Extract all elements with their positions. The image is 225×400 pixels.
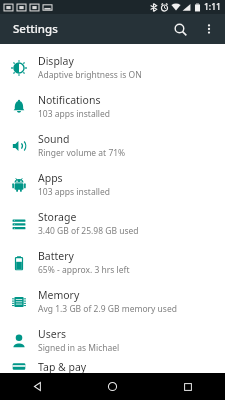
staticText: Adaptive brightness is ON (38, 69, 142, 81)
button[interactable]: Back (0, 373, 75, 400)
staticText: Signed in as Michael (38, 342, 120, 354)
staticText: 65% - approx. 3 hrs left (38, 264, 130, 276)
button[interactable]: Users (0, 321, 225, 360)
staticText: 103 apps installed (38, 108, 111, 120)
staticText: 3.40 GB of 25.98 GB used (38, 225, 139, 237)
button[interactable]: Storage (0, 204, 225, 243)
staticText: Memory (38, 288, 80, 302)
staticText: Users (38, 327, 66, 341)
staticText: Sound (38, 132, 70, 146)
staticText: Ringer volume at 71% (38, 147, 126, 159)
staticText: Battery (38, 249, 74, 263)
button[interactable]: More options (195, 15, 223, 43)
staticText: Tap & pay (38, 360, 87, 373)
staticText: Storage (38, 210, 77, 224)
staticText: Settings (13, 21, 58, 37)
button[interactable]: Battery (0, 243, 225, 282)
staticText: Avg 1.3 GB of 2.9 GB memory used (38, 303, 177, 315)
staticText: Notifications (38, 93, 101, 107)
button[interactable]: Notifications (0, 87, 225, 126)
button[interactable]: Memory (0, 282, 225, 321)
button[interactable]: Apps (0, 165, 225, 204)
staticText: 103 apps installed (38, 186, 111, 198)
button[interactable]: Tap & pay (0, 360, 225, 373)
button[interactable]: Search (165, 14, 195, 44)
button[interactable]: Sound (0, 126, 225, 165)
staticText: Display (38, 54, 74, 68)
button[interactable]: Display (0, 48, 225, 87)
staticText: Apps (38, 171, 63, 185)
staticText: 1:11 (204, 1, 221, 13)
button[interactable]: Home (75, 373, 150, 400)
button[interactable]: Recent apps (150, 373, 225, 400)
